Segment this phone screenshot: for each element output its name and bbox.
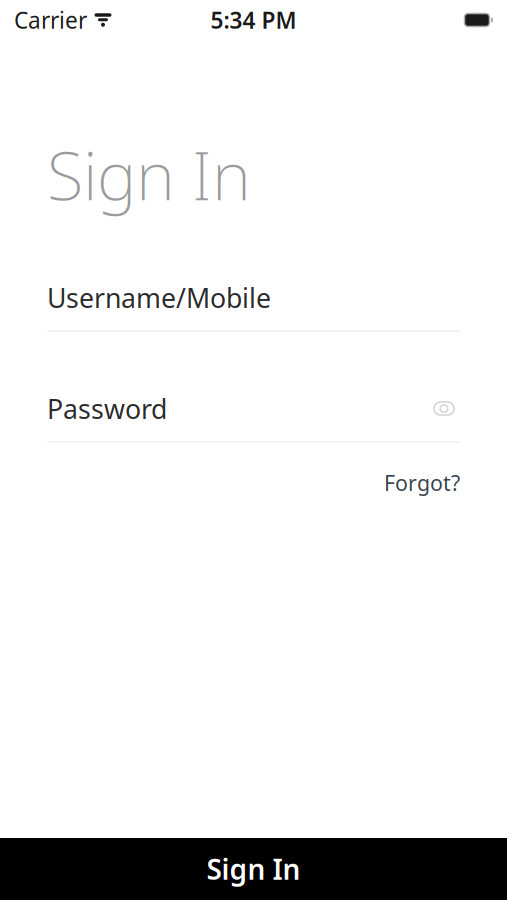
button[interactable]: Sign In (0, 838, 507, 900)
button[interactable]: Forgot? (368, 462, 460, 503)
staticText: Sign In (47, 130, 251, 218)
staticText: Forgot? (384, 468, 460, 497)
staticText: Sign In (206, 850, 300, 888)
button[interactable]: Show password (428, 395, 460, 421)
staticText: 5:34 PM (210, 5, 296, 35)
staticText: Password (47, 391, 167, 426)
staticText: Username/Mobile (47, 280, 271, 315)
staticText: Carrier (14, 5, 87, 35)
